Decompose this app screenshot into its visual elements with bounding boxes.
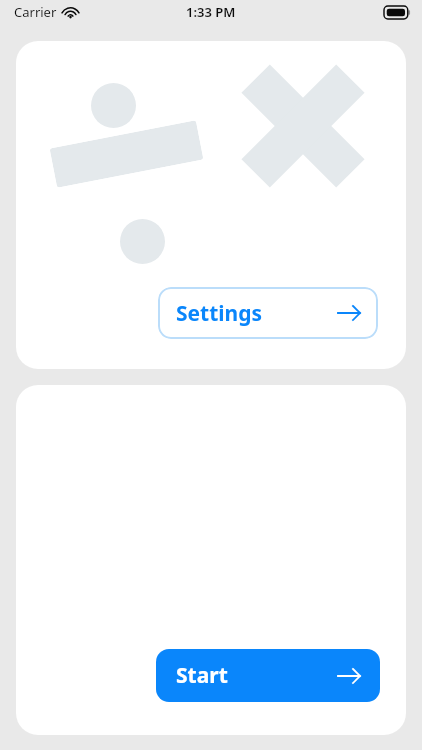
staticText: Start [176, 661, 228, 690]
staticText: Carrier [14, 3, 57, 21]
staticText: Settings [176, 299, 263, 328]
staticText: 1:33 PM [186, 3, 236, 21]
button[interactable]: Settings [158, 287, 378, 339]
other: Go [338, 668, 360, 684]
button[interactable]: Start [156, 649, 380, 702]
other: Go [338, 305, 360, 321]
